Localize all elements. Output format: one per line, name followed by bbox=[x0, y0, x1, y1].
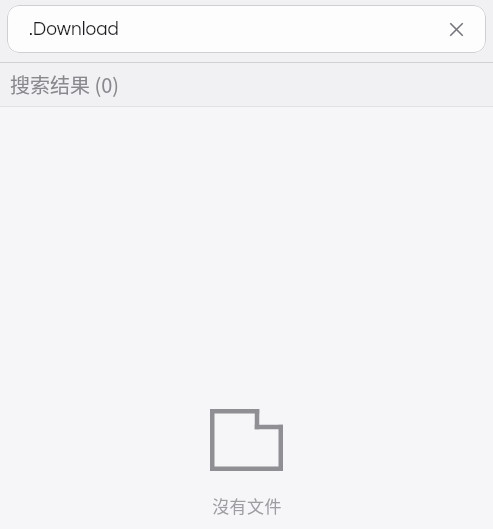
staticText: 搜索结果 (0) bbox=[10, 70, 120, 99]
staticText: .Download bbox=[29, 19, 119, 39]
staticText: 沒有文件 bbox=[212, 493, 282, 518]
button[interactable]: Clear search bbox=[440, 6, 486, 52]
button[interactable]: .Download bbox=[7, 5, 486, 53]
